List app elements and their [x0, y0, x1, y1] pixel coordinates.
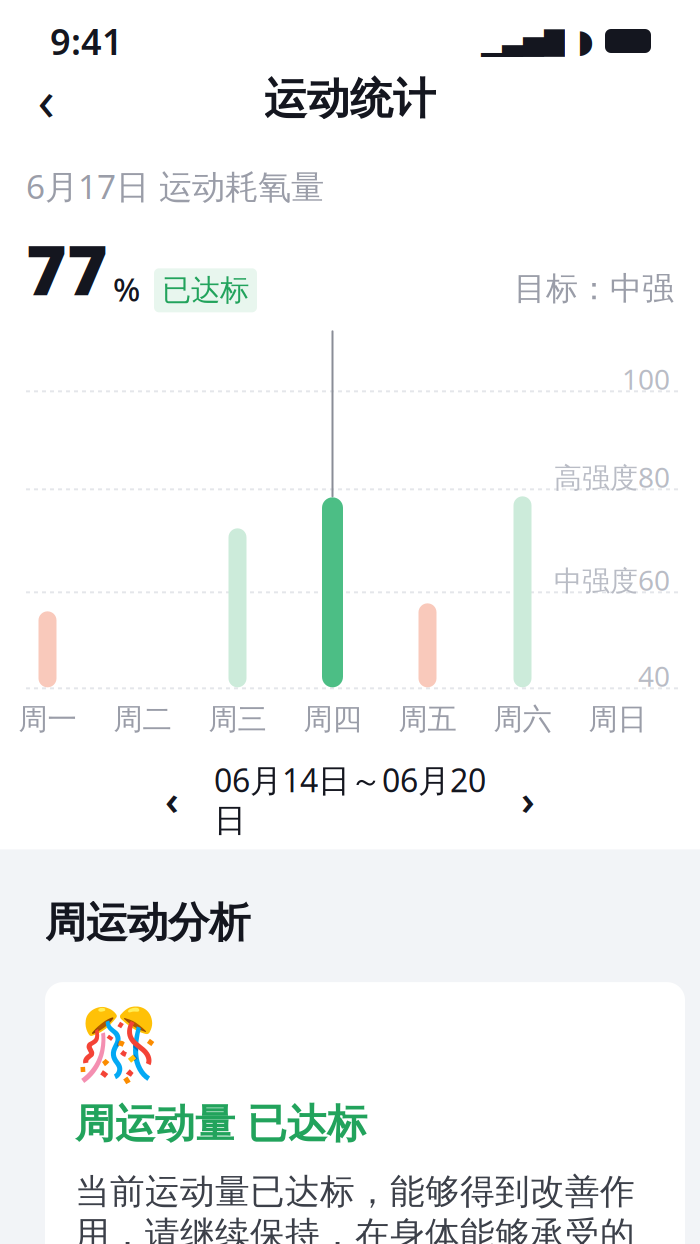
staticText: 9:41	[50, 17, 123, 65]
staticText: 当前运动量已达标，能够得到改善作用，请继续保持，在身体能够承受的范围内，可以适当…	[75, 1170, 635, 1244]
staticText: ›	[521, 773, 535, 826]
staticText: 周运动分析	[45, 897, 250, 948]
staticText: 运动统计	[264, 73, 436, 125]
staticText: 06月14日～06月20日	[214, 758, 486, 840]
staticText: 中强度60	[554, 561, 670, 598]
staticText: 周一	[18, 701, 76, 737]
button[interactable]: 返回	[14, 67, 78, 131]
staticText: 周二	[113, 701, 171, 737]
button[interactable]: 下一周	[500, 771, 556, 827]
staticText: 100	[622, 360, 670, 397]
staticText: ◗	[577, 23, 594, 59]
button[interactable]: 上一周	[144, 771, 200, 827]
staticText: 已达标	[162, 272, 249, 308]
staticText: 目标：中强	[514, 269, 674, 308]
staticText: 🎊	[75, 1006, 161, 1085]
staticText: 周日	[588, 701, 646, 737]
staticText: 周五	[398, 701, 456, 737]
staticText: 周六	[493, 701, 551, 737]
staticText: 6月17日 运动耗氧量	[26, 164, 324, 208]
staticText: 高强度80	[554, 458, 670, 495]
button[interactable]: 06月14日～06月20日	[200, 771, 500, 827]
staticText: 周四	[303, 701, 361, 737]
staticText: ▁▃▅▇	[481, 26, 565, 56]
staticText: ‹	[37, 62, 54, 136]
staticText: 周三	[208, 701, 266, 737]
staticText: 周运动量 已达标	[75, 1099, 367, 1148]
staticText: 77	[26, 222, 108, 314]
staticText: %	[113, 268, 140, 310]
staticText: ‹	[165, 773, 179, 826]
staticText: 40	[638, 657, 670, 694]
